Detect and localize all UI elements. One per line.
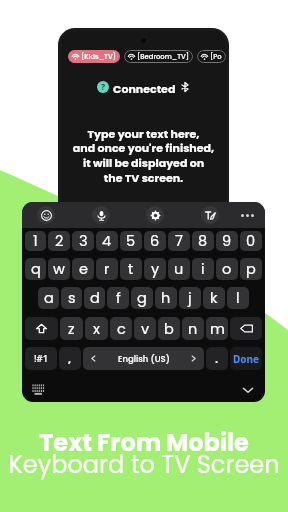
- button[interactable]: Shift: [25, 317, 58, 340]
- button[interactable]: Hide keyboard: [241, 383, 255, 397]
- button[interactable]: s: [61, 287, 82, 309]
- button[interactable]: p: [240, 258, 262, 280]
- staticText: t: [128, 259, 134, 279]
- button[interactable]: x: [85, 317, 108, 340]
- button[interactable]: Handwriting: [201, 206, 219, 224]
- button[interactable]: Emoji: [37, 206, 55, 224]
- staticText: [Bedroom_TV]: [137, 52, 189, 62]
- button[interactable]: Settings: [146, 206, 164, 224]
- staticText: 9: [222, 231, 232, 251]
- button[interactable]: b: [158, 317, 180, 340]
- button[interactable]: w: [48, 258, 70, 280]
- button[interactable]: 6: [144, 231, 166, 251]
- staticText: w: [53, 259, 65, 279]
- staticText: n: [188, 319, 198, 339]
- button[interactable]: 4: [96, 231, 118, 251]
- staticText: o: [222, 259, 232, 279]
- staticText: e: [79, 259, 88, 279]
- staticText: 3: [79, 231, 88, 251]
- staticText: English (US): [118, 353, 170, 365]
- button[interactable]: 5: [120, 231, 142, 251]
- button[interactable]: !#1: [25, 347, 57, 370]
- staticText: j: [188, 288, 192, 308]
- button[interactable]: i: [192, 258, 214, 280]
- staticText: x: [93, 319, 100, 339]
- staticText: Keyboard to TV Screen: [8, 448, 280, 482]
- button[interactable]: [Kids_TV]: [72, 50, 116, 63]
- button[interactable]: c: [110, 317, 132, 340]
- staticText: v: [141, 319, 150, 339]
- staticText: k: [210, 288, 218, 308]
- button[interactable]: 3: [72, 231, 94, 251]
- button[interactable]: ,: [59, 347, 81, 370]
- staticText: u: [174, 259, 184, 279]
- staticText: Text From Mobile: [39, 426, 249, 460]
- button[interactable]: o: [216, 258, 238, 280]
- button[interactable]: f: [107, 287, 129, 309]
- staticText: [Kids_TV]: [81, 52, 116, 62]
- button[interactable]: Backspace: [230, 317, 262, 340]
- staticText: Connected: [113, 81, 176, 93]
- staticText: p: [246, 259, 256, 279]
- staticText: z: [68, 319, 75, 339]
- staticText: 7: [175, 231, 183, 251]
- staticText: y: [151, 259, 160, 279]
- staticText: 6: [150, 231, 160, 251]
- staticText: h: [161, 288, 171, 308]
- button[interactable]: r: [96, 258, 118, 280]
- staticText: g: [137, 288, 147, 308]
- button[interactable]: More options: [238, 206, 256, 224]
- button[interactable]: e: [72, 258, 94, 280]
- staticText: 0: [246, 231, 256, 251]
- staticText: [Po: [210, 52, 222, 62]
- button[interactable]: Done: [230, 347, 262, 370]
- button[interactable]: 2: [48, 231, 70, 251]
- button[interactable]: y: [144, 258, 166, 280]
- button[interactable]: q: [25, 258, 46, 280]
- staticText: m: [210, 319, 225, 339]
- staticText: q: [31, 259, 41, 279]
- button[interactable]: Change keyboard: [32, 384, 45, 397]
- button[interactable]: 0: [240, 231, 262, 251]
- button[interactable]: 8: [192, 231, 214, 251]
- staticText: 8: [198, 231, 208, 251]
- button[interactable]: 1: [25, 231, 46, 251]
- button[interactable]: l: [227, 287, 249, 309]
- button[interactable]: u: [168, 258, 190, 280]
- button[interactable]: Voice input: [92, 206, 110, 224]
- staticText: l: [236, 288, 240, 308]
- staticText: f: [116, 288, 121, 308]
- staticText: 2: [55, 231, 64, 251]
- staticText: r: [104, 259, 110, 279]
- staticText: 5: [126, 231, 136, 251]
- button[interactable]: t: [120, 258, 142, 280]
- staticText: d: [90, 288, 100, 308]
- button[interactable]: n: [182, 317, 204, 340]
- button[interactable]: d: [84, 287, 105, 309]
- button[interactable]: English (US): [83, 347, 204, 370]
- button[interactable]: a: [38, 287, 59, 309]
- button[interactable]: z: [60, 317, 83, 340]
- button[interactable]: h: [155, 287, 177, 309]
- button[interactable]: k: [203, 287, 225, 309]
- button[interactable]: [Po: [201, 50, 222, 63]
- staticText: s: [68, 288, 76, 308]
- staticText: Type your text here, and once you're fin…: [61, 126, 226, 186]
- staticText: Done: [233, 352, 260, 366]
- staticText: i: [201, 259, 205, 279]
- button[interactable]: v: [134, 317, 156, 340]
- button[interactable]: 7: [168, 231, 190, 251]
- button[interactable]: .: [206, 347, 228, 370]
- staticText: 1: [33, 231, 38, 251]
- staticText: ?: [101, 81, 106, 93]
- staticText: .: [215, 351, 219, 366]
- staticText: ,: [68, 351, 72, 366]
- staticText: !#1: [34, 352, 49, 365]
- button[interactable]: g: [131, 287, 153, 309]
- button[interactable]: 9: [216, 231, 238, 251]
- staticText: 4: [102, 231, 112, 251]
- button[interactable]: [Bedroom_TV]: [128, 50, 189, 63]
- staticText: c: [117, 319, 126, 339]
- button[interactable]: j: [179, 287, 201, 309]
- button[interactable]: m: [206, 317, 228, 340]
